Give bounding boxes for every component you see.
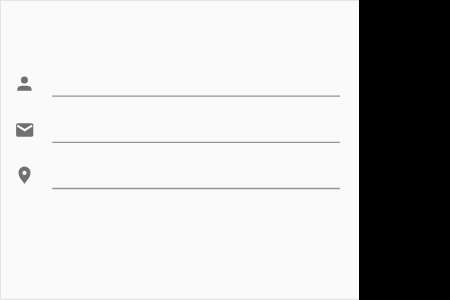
other: Name icon <box>0 61 49 107</box>
other: Email icon <box>0 107 49 153</box>
button[interactable]: Email <box>0 107 359 153</box>
button[interactable]: Address <box>0 153 359 199</box>
button[interactable]: Name <box>0 61 359 107</box>
other: Address icon <box>0 153 49 199</box>
